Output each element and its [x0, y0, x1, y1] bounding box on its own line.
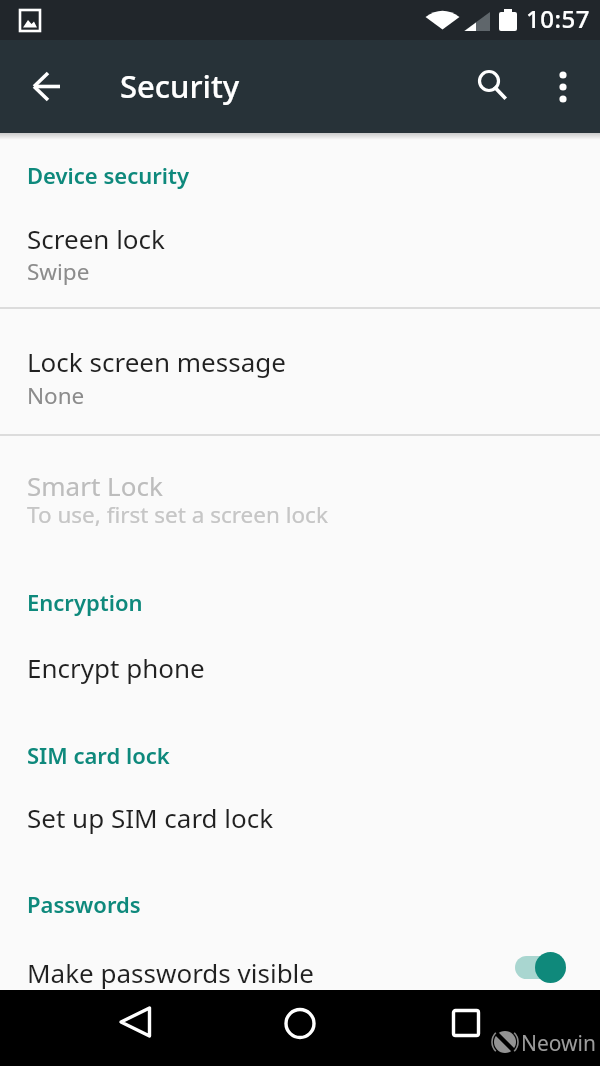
button[interactable]: Screen lock: [0, 196, 600, 307]
staticText: Encryption: [27, 587, 143, 617]
button[interactable]: Lock screen message: [0, 309, 600, 434]
staticText: Passwords: [27, 889, 141, 919]
staticText: To use, first set a screen lock: [27, 499, 328, 530]
staticText: Screen lock: [27, 221, 165, 256]
button[interactable]: [539, 62, 587, 110]
staticText: Set up SIM card lock: [27, 800, 274, 835]
button[interactable]: [103, 992, 167, 1056]
button[interactable]: [467, 63, 515, 111]
staticText: Make passwords visible: [27, 955, 314, 990]
staticText: SIM card lock: [27, 740, 170, 770]
staticText: Smart Lock: [27, 468, 163, 503]
staticText: Encrypt phone: [27, 650, 205, 685]
staticText: 10:57: [526, 2, 590, 35]
button[interactable]: Set up SIM card lock: [0, 765, 600, 855]
staticText: Lock screen message: [27, 344, 286, 379]
button[interactable]: [434, 991, 498, 1055]
button[interactable]: [268, 991, 332, 1055]
button[interactable]: Encrypt phone: [0, 615, 600, 705]
button[interactable]: Make passwords visible: [0, 921, 600, 990]
staticText: Security: [120, 65, 240, 107]
staticText: Swipe: [27, 256, 90, 287]
staticText: Device security: [27, 160, 189, 190]
staticText: None: [27, 380, 85, 411]
staticText: Neowin: [521, 1029, 596, 1058]
button[interactable]: [22, 62, 70, 110]
